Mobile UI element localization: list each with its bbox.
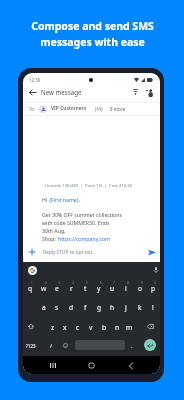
staticText: p [151, 284, 156, 293]
staticText: y [97, 284, 101, 293]
button[interactable]: p [146, 279, 160, 297]
button[interactable]: . [127, 337, 137, 354]
staticText: To: [29, 106, 36, 112]
button[interactable]: g [92, 298, 106, 316]
button[interactable]: Enter [144, 339, 156, 351]
staticText: messages with ease [40, 35, 145, 49]
button[interactable]: Add recipients [143, 86, 155, 98]
button[interactable]: w [37, 279, 51, 297]
button[interactable]: n [110, 318, 124, 336]
staticText: e [55, 284, 59, 293]
staticText: Unicode 120/483 | Parts 1/6 | Cost $16.3… [45, 183, 133, 189]
button[interactable]: d [64, 298, 78, 316]
staticText: h [110, 303, 115, 312]
button[interactable]: f [78, 298, 92, 316]
staticText: Shop: [42, 235, 58, 242]
button[interactable]: Recent apps [46, 359, 59, 372]
staticText: . [131, 342, 133, 349]
staticText: 12:30 [29, 77, 41, 83]
button[interactable]: j [119, 298, 133, 316]
staticText: 3 [58, 281, 60, 285]
staticText: u [110, 284, 115, 293]
button[interactable]: Google Search [28, 266, 37, 275]
staticText: 30th Aug. [42, 227, 66, 234]
button[interactable]: v [84, 318, 98, 336]
staticText: 2 [45, 281, 47, 285]
staticText: 8 [127, 281, 129, 285]
button[interactable]: i [119, 279, 133, 297]
button[interactable]: Back [26, 86, 38, 98]
staticText: VIP Customers [51, 105, 87, 112]
staticText: k [138, 303, 142, 312]
staticText: ?123 [26, 343, 36, 349]
staticText: o [138, 284, 142, 293]
button[interactable]: Shift [24, 318, 38, 335]
staticText: g [97, 303, 102, 312]
button[interactable]: h [105, 298, 119, 316]
button[interactable]: / [45, 337, 57, 354]
button[interactable]: m [122, 318, 136, 336]
button[interactable]: t [78, 279, 92, 297]
staticText: x [63, 323, 67, 332]
staticText: q [28, 284, 33, 293]
staticText: {First name}, [49, 196, 81, 203]
button[interactable]: b [97, 318, 111, 336]
staticText: 1 [31, 281, 33, 285]
staticText: v [89, 323, 93, 332]
staticText: b [102, 323, 107, 332]
button[interactable]: Message templates [129, 86, 141, 98]
staticText: (44) [95, 106, 103, 112]
staticText: Hi [42, 196, 49, 203]
button[interactable]: c [71, 318, 85, 336]
staticText: New message [41, 88, 82, 96]
staticText: t [84, 284, 87, 293]
button[interactable]: l [146, 298, 160, 316]
staticText: 6 [100, 281, 102, 285]
button[interactable]: Add attachment [26, 246, 37, 257]
staticText: d [69, 303, 74, 312]
staticText: z [51, 323, 55, 332]
button[interactable]: k [133, 298, 147, 316]
staticText: f [84, 303, 87, 312]
staticText: Reply STOP to opt-out. [43, 249, 94, 256]
staticText: w [41, 284, 47, 293]
staticText: Get 30% OFF summer collections [42, 211, 122, 218]
button[interactable]: Backspace [143, 318, 157, 335]
button[interactable]: r [64, 279, 78, 297]
button[interactable]: Home [85, 359, 98, 372]
staticText: Compose and send SMS [31, 19, 154, 33]
staticText: n [115, 323, 120, 332]
button[interactable]: a [37, 298, 51, 316]
staticText: 0 [154, 281, 156, 285]
staticText: 8 more [110, 106, 126, 112]
button[interactable]: Voice input [151, 265, 160, 274]
staticText: / [50, 342, 53, 349]
staticText: with code SUMMER30. Ends [42, 219, 110, 226]
button[interactable]: x [58, 318, 72, 336]
button[interactable]: q [23, 279, 37, 297]
button[interactable]: Emoji [59, 337, 71, 354]
button[interactable]: y [92, 279, 106, 297]
button[interactable]: s [50, 298, 64, 316]
staticText: 7 [113, 281, 115, 285]
staticText: https://company.com [58, 235, 110, 242]
button[interactable]: e [50, 279, 64, 297]
staticText: 4 [72, 281, 74, 285]
button[interactable]: u [105, 279, 119, 297]
staticText: 5 [86, 281, 88, 285]
staticText: i [125, 284, 127, 293]
staticText: m [126, 323, 133, 332]
staticText: s [55, 303, 59, 312]
staticText: a [42, 303, 46, 312]
button[interactable]: ?123 [23, 337, 38, 354]
staticText: j [125, 303, 127, 312]
staticText: r [70, 284, 73, 293]
button[interactable]: Back [124, 359, 137, 372]
button[interactable]: o [133, 279, 147, 297]
button[interactable]: z [46, 318, 60, 336]
button[interactable]: Send [146, 246, 158, 258]
staticText: l [152, 303, 154, 312]
staticText: c [76, 323, 80, 332]
staticText: 9 [141, 281, 143, 285]
